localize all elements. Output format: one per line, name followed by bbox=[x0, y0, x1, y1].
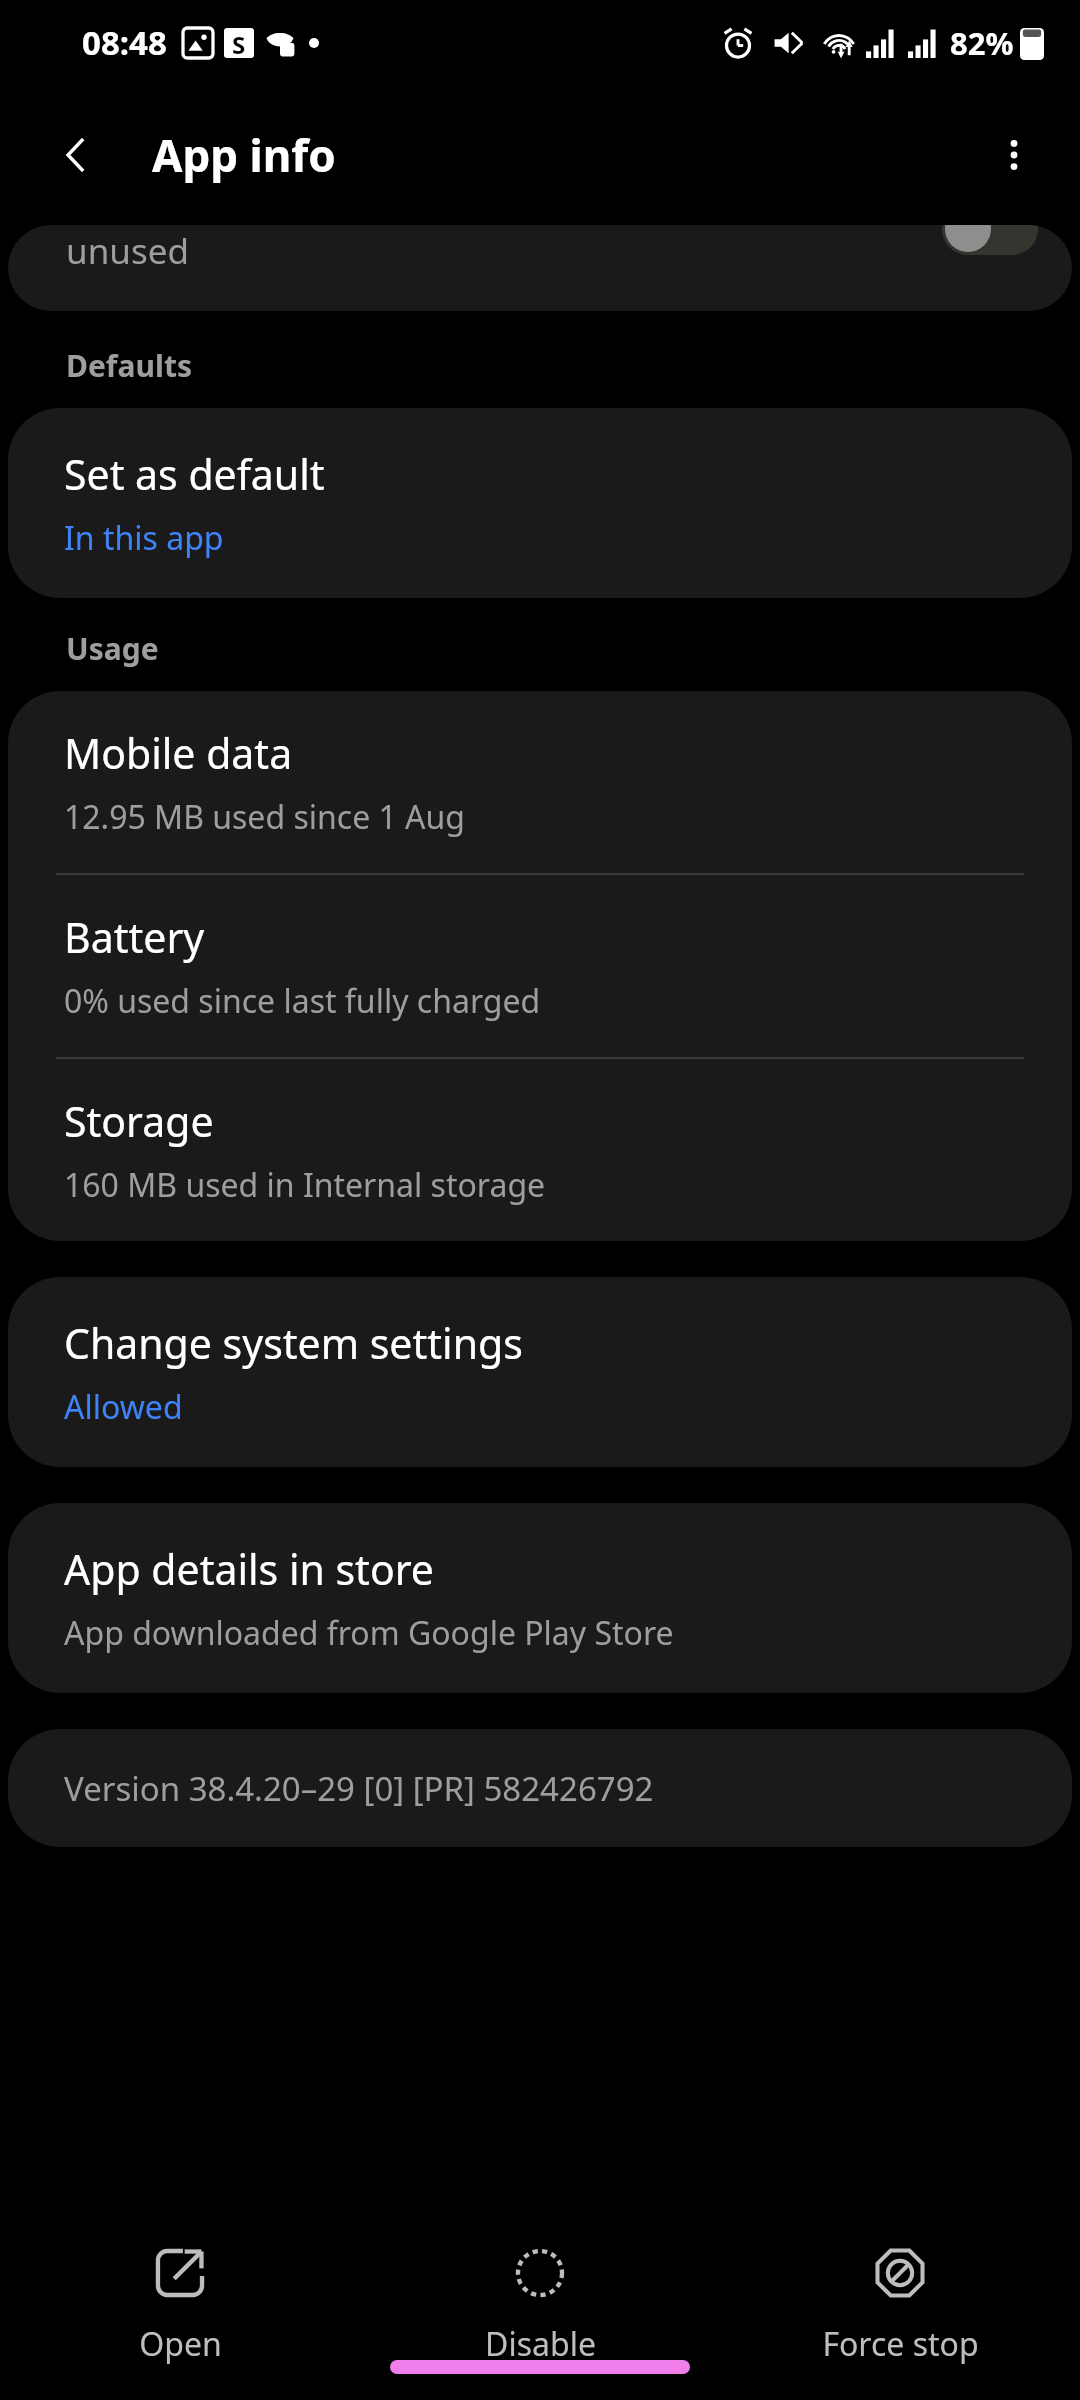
button[interactable]: Disable bbox=[360, 2236, 720, 2374]
staticText: Set as default bbox=[64, 446, 325, 502]
staticText: Defaults bbox=[66, 345, 192, 386]
staticText: Storage bbox=[64, 1093, 214, 1149]
button[interactable]: unused bbox=[8, 225, 1072, 311]
staticText: Mobile data bbox=[64, 725, 293, 781]
button[interactable]: Force stop bbox=[720, 2236, 1080, 2374]
staticText: Disable bbox=[485, 2322, 596, 2366]
staticText: Change system settings bbox=[64, 1315, 523, 1371]
staticText: App details in store bbox=[64, 1541, 434, 1597]
staticText: In this app bbox=[64, 516, 224, 560]
staticText: 08:48 bbox=[82, 20, 167, 65]
staticText: 0% used since last fully charged bbox=[64, 979, 541, 1023]
button[interactable]: Set as default bbox=[8, 408, 1072, 598]
button[interactable]: Mobile data bbox=[8, 691, 1072, 1241]
staticText: 12.95 MB used since 1 Aug bbox=[64, 795, 466, 839]
staticText: Battery bbox=[64, 909, 205, 965]
button[interactable]: Back bbox=[40, 119, 112, 191]
staticText: 160 MB used in Internal storage bbox=[64, 1163, 546, 1207]
button[interactable]: Version 38.4.20–29 [0] [PR] 582426792 bbox=[8, 1729, 1072, 1847]
staticText: Open bbox=[139, 2322, 222, 2366]
staticText: App downloaded from Google Play Store bbox=[64, 1611, 674, 1655]
button[interactable]: Change system settings bbox=[8, 1277, 1072, 1467]
staticText: App info bbox=[152, 125, 336, 185]
button[interactable]: Open bbox=[0, 2236, 360, 2374]
staticText: Force stop bbox=[822, 2322, 979, 2366]
staticText: Version 38.4.20–29 [0] [PR] 582426792 bbox=[64, 1766, 654, 1811]
staticText: S bbox=[232, 28, 246, 58]
staticText: 82% bbox=[950, 22, 1014, 64]
staticText: Allowed bbox=[64, 1385, 183, 1429]
button[interactable]: More options bbox=[978, 119, 1050, 191]
staticText: unused bbox=[66, 227, 189, 275]
staticText: Usage bbox=[66, 628, 159, 669]
button[interactable]: App details in store bbox=[8, 1503, 1072, 1693]
